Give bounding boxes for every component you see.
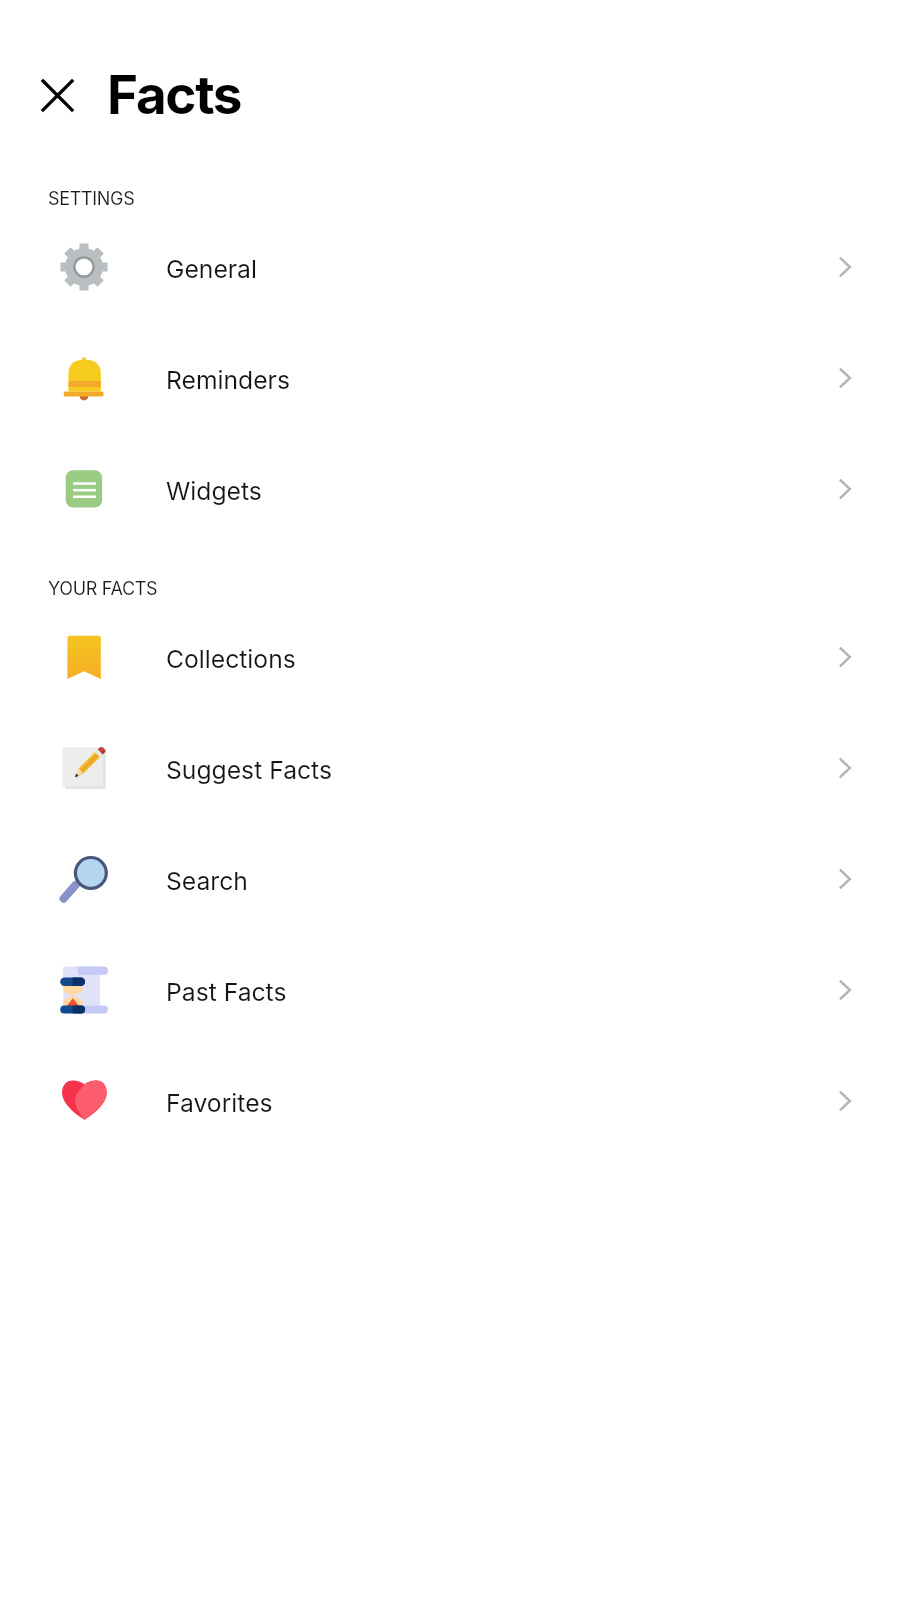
button[interactable]: Suggest Facts	[0, 712, 900, 823]
button[interactable]: Favorites	[0, 1045, 900, 1156]
button[interactable]: General	[0, 211, 900, 322]
button[interactable]: Reminders	[0, 322, 900, 433]
button[interactable]: Search	[0, 823, 900, 934]
staticText: Facts	[107, 63, 242, 127]
button[interactable]: Past Facts	[0, 934, 900, 1045]
staticText: SETTINGS	[48, 188, 135, 210]
button[interactable]: Close	[31, 69, 84, 122]
staticText: General	[166, 254, 257, 284]
staticText: Collections	[166, 644, 296, 674]
staticText: Widgets	[166, 476, 262, 506]
staticText: Favorites	[166, 1088, 273, 1118]
staticText: YOUR FACTS	[48, 578, 158, 600]
staticText: Past Facts	[166, 977, 287, 1007]
button[interactable]: Widgets	[0, 433, 900, 544]
staticText: Search	[166, 866, 248, 896]
button[interactable]: Collections	[0, 601, 900, 712]
staticText: Suggest Facts	[166, 755, 332, 785]
staticText: Reminders	[166, 365, 290, 395]
